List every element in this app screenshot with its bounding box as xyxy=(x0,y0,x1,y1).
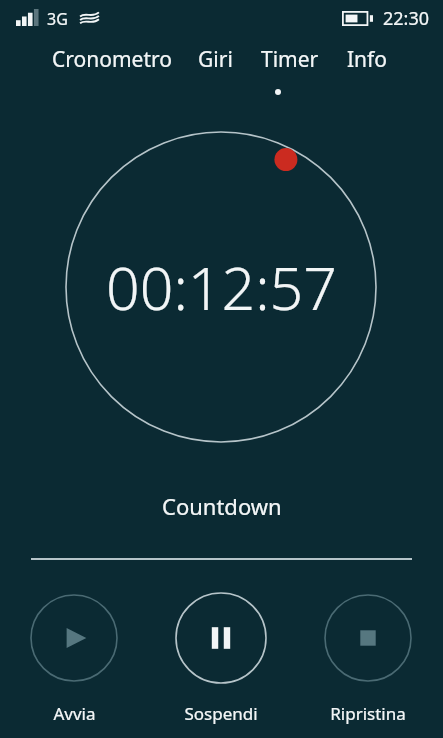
staticText: Timer xyxy=(261,45,319,74)
button[interactable]: Giri xyxy=(198,45,233,74)
button[interactable]: Ripristina xyxy=(308,594,428,725)
staticText: Sospendi xyxy=(184,702,258,725)
button[interactable]: 00:12:57 xyxy=(65,131,377,443)
button[interactable]: Cronometro xyxy=(52,45,172,74)
staticText: 3G xyxy=(47,8,68,30)
staticText: Cronometro xyxy=(52,45,172,74)
staticText: 00:12:57 xyxy=(106,247,337,327)
staticText: 22:30 xyxy=(383,6,430,31)
staticText: Countdown xyxy=(162,491,282,521)
staticText: Ripristina xyxy=(330,702,406,725)
staticText: Giri xyxy=(198,45,233,74)
button[interactable]: Avvia xyxy=(14,594,134,725)
staticText: Avvia xyxy=(53,702,96,725)
button[interactable]: Timer xyxy=(261,45,319,74)
button[interactable]: Sospendi xyxy=(159,592,283,725)
button[interactable]: Info xyxy=(347,45,388,74)
staticText: Info xyxy=(347,45,388,74)
